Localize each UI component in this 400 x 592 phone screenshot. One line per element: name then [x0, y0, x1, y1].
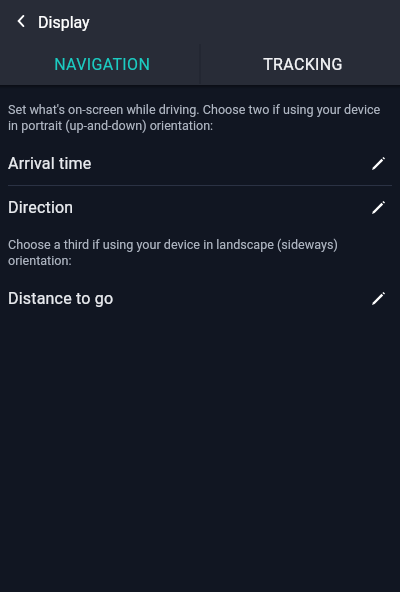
button[interactable]: Arrival time: [0, 142, 400, 185]
staticText: NAVIGATION: [54, 55, 150, 74]
staticText: Set what's on-screen while driving. Choo…: [8, 102, 390, 133]
staticText: TRACKING: [263, 55, 343, 74]
other: Edit: [372, 157, 385, 170]
staticText: Direction: [8, 198, 74, 217]
button[interactable]: Direction: [0, 186, 400, 229]
staticText: Arrival time: [8, 154, 92, 173]
staticText: Distance to go: [8, 289, 114, 308]
other: Edit: [372, 292, 385, 305]
staticText: Choose a third if using your device in l…: [8, 237, 390, 268]
staticText: Display: [38, 13, 90, 32]
button[interactable]: NAVIGATION: [0, 40, 199, 85]
button[interactable]: Back: [0, 0, 38, 40]
other: Edit: [372, 201, 385, 214]
button[interactable]: TRACKING: [201, 40, 400, 85]
button[interactable]: Distance to go: [0, 277, 400, 320]
